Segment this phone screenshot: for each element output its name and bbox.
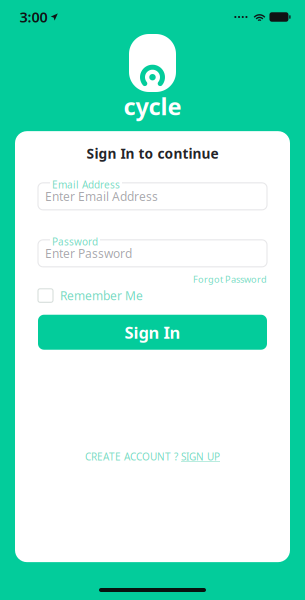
button[interactable]: Forgot Password <box>193 273 267 285</box>
staticText: Remember Me <box>60 287 143 304</box>
staticText: cycle <box>123 90 181 122</box>
button[interactable]: Remember Me <box>38 287 143 304</box>
staticText: Enter Password <box>45 245 132 261</box>
staticText: Sign In to continue <box>86 144 218 163</box>
staticText: 3:00 <box>19 7 47 27</box>
staticText: Password <box>52 235 98 248</box>
staticText: Enter Email Address <box>45 188 158 204</box>
button[interactable]: Sign In <box>38 315 267 350</box>
staticText: Sign In <box>124 321 180 343</box>
staticText: CREATE ACCOUNT ? <box>85 450 178 463</box>
staticText: SIGN UP <box>181 450 220 463</box>
staticText: Forgot Password <box>193 273 267 285</box>
button[interactable]: CREATE ACCOUNT ? <box>85 450 220 463</box>
staticText: Email Address <box>52 178 120 191</box>
